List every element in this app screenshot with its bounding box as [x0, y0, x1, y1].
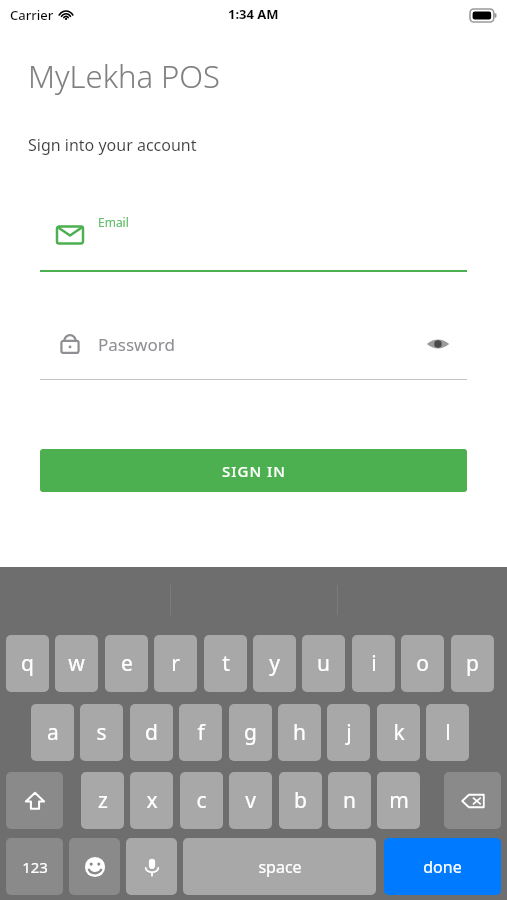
button[interactable]: Email: [40, 200, 467, 272]
button[interactable]: i: [352, 635, 395, 692]
button[interactable]: done: [384, 838, 501, 895]
button[interactable]: u: [302, 635, 345, 692]
button[interactable]: w: [55, 635, 98, 692]
button[interactable]: Shift: [6, 772, 63, 829]
staticText: MyLekha POS: [28, 55, 221, 97]
button[interactable]: c: [180, 772, 223, 829]
staticText: h: [293, 718, 306, 747]
staticText: i: [371, 649, 377, 678]
staticText: x: [146, 786, 158, 815]
staticText: o: [416, 649, 429, 678]
staticText: Carrier: [10, 6, 54, 24]
staticText: l: [445, 718, 451, 747]
button[interactable]: a: [31, 704, 74, 761]
staticText: e: [121, 649, 133, 678]
staticText: v: [245, 786, 256, 815]
staticText: w: [68, 649, 85, 678]
staticText: Sign into your account: [28, 134, 197, 156]
button[interactable]: Dictation: [126, 838, 177, 895]
staticText: m: [389, 786, 409, 815]
staticText: 1:34 AM: [228, 5, 279, 23]
button[interactable]: j: [327, 704, 370, 761]
staticText: c: [196, 786, 207, 815]
staticText: p: [466, 649, 479, 678]
staticText: 123: [22, 857, 48, 877]
button[interactable]: m: [377, 772, 420, 829]
button[interactable]: Password: [40, 312, 467, 380]
button[interactable]: t: [204, 635, 247, 692]
staticText: r: [171, 649, 180, 678]
button[interactable]: space: [183, 838, 376, 895]
button[interactable]: v: [229, 772, 272, 829]
staticText: g: [244, 718, 257, 747]
staticText: t: [222, 649, 230, 678]
button[interactable]: l: [426, 704, 469, 761]
button[interactable]: s: [80, 704, 123, 761]
button[interactable]: r: [154, 635, 197, 692]
button[interactable]: Show password: [424, 330, 452, 358]
button[interactable]: y: [253, 635, 296, 692]
staticText: n: [343, 786, 356, 815]
button[interactable]: k: [377, 704, 420, 761]
staticText: u: [317, 649, 330, 678]
button[interactable]: z: [81, 772, 124, 829]
button[interactable]: x: [130, 772, 173, 829]
staticText: space: [258, 856, 302, 878]
staticText: f: [197, 718, 205, 747]
button[interactable]: g: [229, 704, 272, 761]
staticText: y: [269, 649, 280, 678]
staticText: done: [423, 856, 462, 878]
button[interactable]: SIGN IN: [40, 449, 467, 492]
button[interactable]: n: [328, 772, 371, 829]
staticText: s: [96, 718, 107, 747]
staticText: q: [21, 649, 34, 678]
staticText: a: [47, 718, 59, 747]
button[interactable]: o: [401, 635, 444, 692]
staticText: z: [98, 786, 108, 815]
button[interactable]: e: [105, 635, 148, 692]
button[interactable]: f: [179, 704, 222, 761]
button[interactable]: b: [279, 772, 322, 829]
staticText: Email: [98, 214, 129, 230]
button[interactable]: 123: [6, 838, 63, 895]
staticText: SIGN IN: [222, 461, 286, 481]
staticText: Password: [98, 333, 175, 356]
button[interactable]: Backspace: [444, 772, 501, 829]
button[interactable]: p: [451, 635, 494, 692]
staticText: j: [346, 718, 352, 747]
button[interactable]: d: [130, 704, 173, 761]
button[interactable]: Emoji: [69, 838, 120, 895]
staticText: b: [294, 786, 307, 815]
button[interactable]: h: [278, 704, 321, 761]
staticText: d: [145, 718, 158, 747]
button[interactable]: q: [6, 635, 49, 692]
staticText: k: [393, 718, 405, 747]
